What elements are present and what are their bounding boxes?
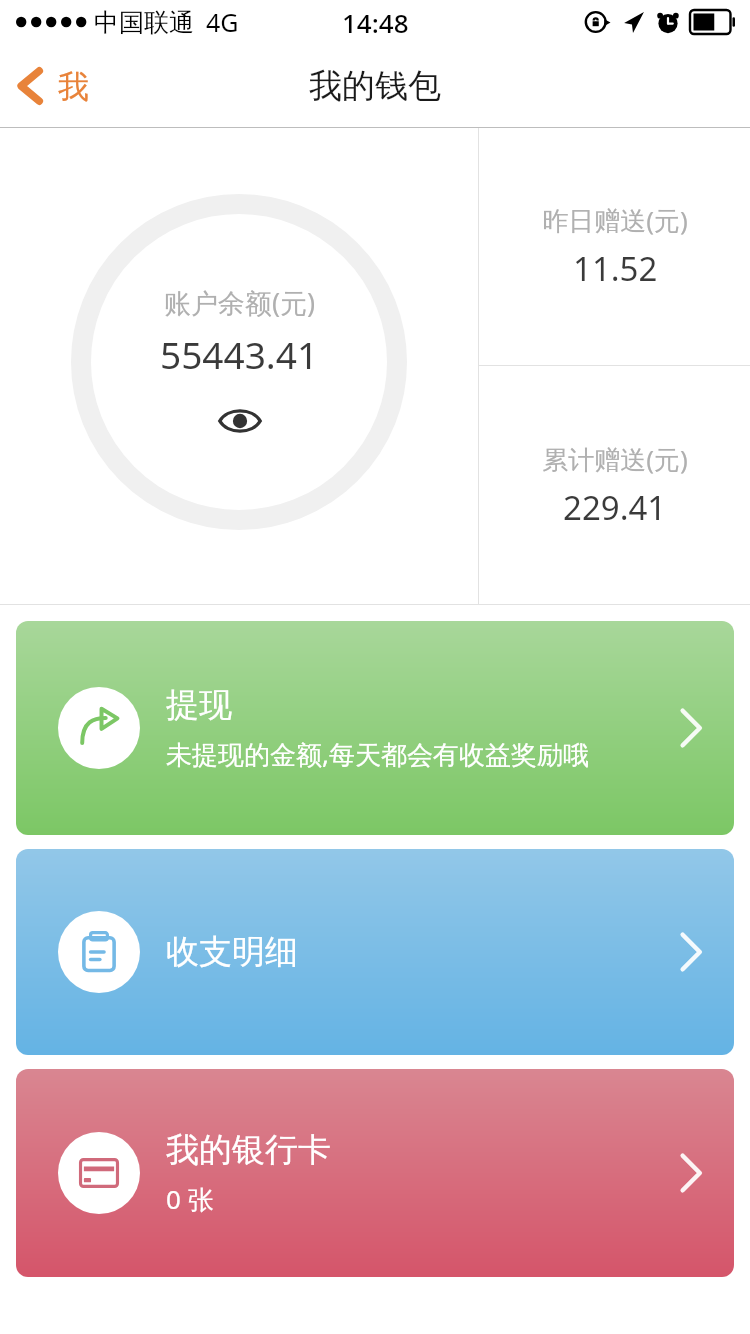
- staticText: 229.41: [563, 485, 667, 530]
- staticText: 昨日赠送(元): [542, 202, 688, 238]
- button[interactable]: Toggle balance visibility: [213, 401, 267, 441]
- button[interactable]: 提现: [16, 621, 734, 835]
- button[interactable]: 我: [0, 58, 107, 114]
- staticText: 55443.41: [160, 329, 319, 379]
- staticText: 提现: [166, 684, 232, 726]
- staticText: 14:48: [342, 5, 409, 40]
- staticText: 11.52: [573, 246, 658, 291]
- staticText: 我的钱包: [309, 65, 441, 107]
- staticText: 账户余额(元): [164, 284, 316, 321]
- staticText: 我: [58, 67, 89, 106]
- staticText: 我的银行卡: [166, 1129, 331, 1171]
- staticText: 0 张: [166, 1181, 214, 1217]
- staticText: 收支明细: [166, 931, 298, 973]
- staticText: 4G: [206, 5, 239, 39]
- staticText: 累计赠送(元): [542, 441, 688, 477]
- button[interactable]: 昨日赠送(元): [479, 128, 750, 365]
- button[interactable]: 账户余额(元): [0, 128, 478, 604]
- button[interactable]: 收支明细: [16, 849, 734, 1055]
- button[interactable]: 累计赠送(元): [479, 366, 750, 604]
- staticText: 未提现的金额,每天都会有收益奖励哦: [166, 736, 589, 772]
- staticText: 中国联通: [94, 7, 194, 38]
- button[interactable]: 我的银行卡: [16, 1069, 734, 1277]
